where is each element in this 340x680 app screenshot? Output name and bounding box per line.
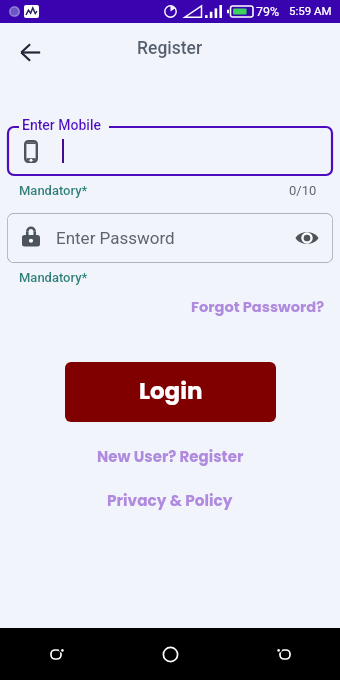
button[interactable]: Login: [65, 362, 276, 422]
button[interactable]: New User? Register: [94, 443, 247, 470]
staticText: Enter Mobile: [22, 117, 101, 133]
staticText: Login: [139, 375, 203, 407]
staticText: 0/10: [289, 183, 317, 198]
button[interactable]: Back: [13, 35, 47, 69]
button[interactable]: Recents: [227, 628, 340, 680]
staticText: Enter Password: [56, 228, 175, 248]
button[interactable]: Show password: [294, 225, 320, 251]
button[interactable]: Home: [114, 628, 227, 680]
staticText: Mandatory*: [19, 183, 88, 198]
staticText: Register: [137, 38, 203, 59]
button[interactable]: Privacy & Policy: [104, 487, 236, 514]
staticText: 79%: [256, 4, 280, 19]
staticText: Mandatory*: [19, 270, 88, 285]
button[interactable]: Forgot Password?: [188, 294, 327, 320]
button[interactable]: Back: [0, 628, 114, 680]
button[interactable]: Enter Password: [7, 213, 333, 263]
staticText: 5:59 AM: [289, 4, 332, 17]
